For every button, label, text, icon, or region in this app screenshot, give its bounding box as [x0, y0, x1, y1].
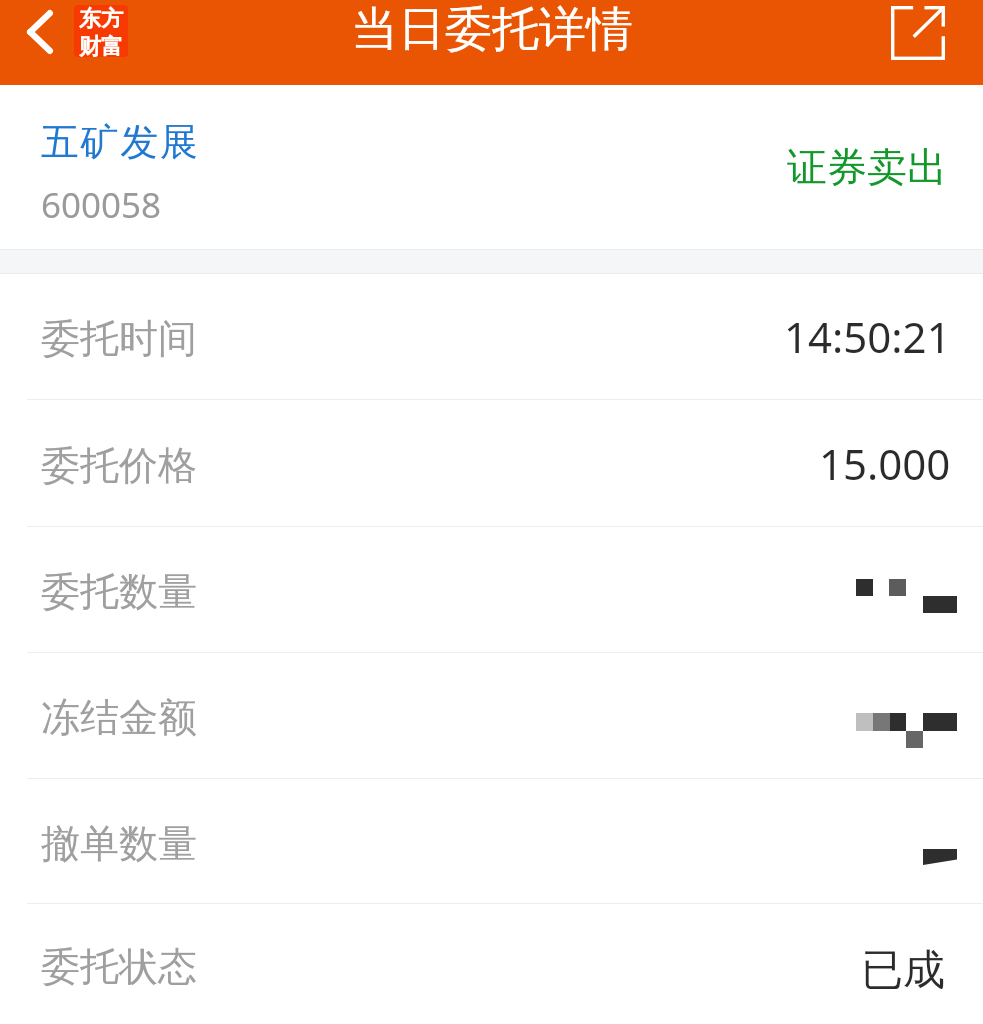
- button[interactable]: 东方财富: [74, 5, 128, 57]
- staticText: 财富: [79, 33, 123, 57]
- button[interactable]: 冻结金额: [0, 653, 983, 779]
- staticText: 委托价格: [41, 441, 197, 490]
- button[interactable]: 委托状态: [0, 904, 983, 1024]
- staticText: 撤单数量: [41, 819, 197, 868]
- staticText: 14:50:21: [784, 308, 951, 365]
- staticText: 东方: [79, 5, 123, 33]
- staticText: 委托时间: [41, 314, 197, 363]
- staticText: 当日委托详情: [351, 0, 633, 56]
- staticText: 委托数量: [41, 567, 197, 616]
- staticText: 五矿发展: [41, 118, 200, 166]
- button[interactable]: 五矿发展: [0, 85, 983, 249]
- button[interactable]: 五矿发展: [26, 107, 216, 227]
- button[interactable]: 委托数量: [0, 527, 983, 653]
- staticText: 已成: [861, 944, 945, 997]
- button[interactable]: Open in browser: [880, 0, 956, 65]
- button[interactable]: 委托价格: [0, 400, 983, 527]
- button[interactable]: 撤单数量: [0, 779, 983, 904]
- staticText: 证券卖出: [787, 142, 947, 192]
- button[interactable]: 委托时间: [0, 274, 983, 400]
- staticText: 冻结金额: [41, 693, 197, 742]
- staticText: 委托状态: [41, 942, 197, 991]
- button[interactable]: Back: [8, 0, 72, 64]
- staticText: 600058: [41, 181, 162, 229]
- staticText: 15.000: [819, 435, 951, 492]
